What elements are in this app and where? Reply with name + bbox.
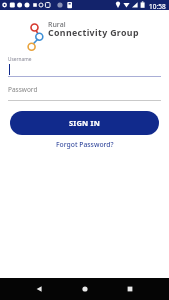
button[interactable]	[78, 282, 92, 296]
staticText: Username	[8, 56, 32, 63]
staticText: SIGN IN	[69, 118, 100, 128]
button[interactable]: Forgot Password?	[56, 140, 114, 149]
button[interactable]: Password	[8, 85, 161, 102]
button[interactable]: SIGN IN	[10, 111, 159, 135]
staticText: Rural	[48, 20, 66, 30]
button[interactable]	[32, 282, 46, 296]
staticText: 10:58	[149, 2, 166, 11]
button[interactable]	[123, 282, 137, 296]
button[interactable]: Username	[8, 56, 161, 78]
staticText: Connectivity Group	[48, 27, 139, 39]
staticText: Password	[8, 85, 38, 94]
